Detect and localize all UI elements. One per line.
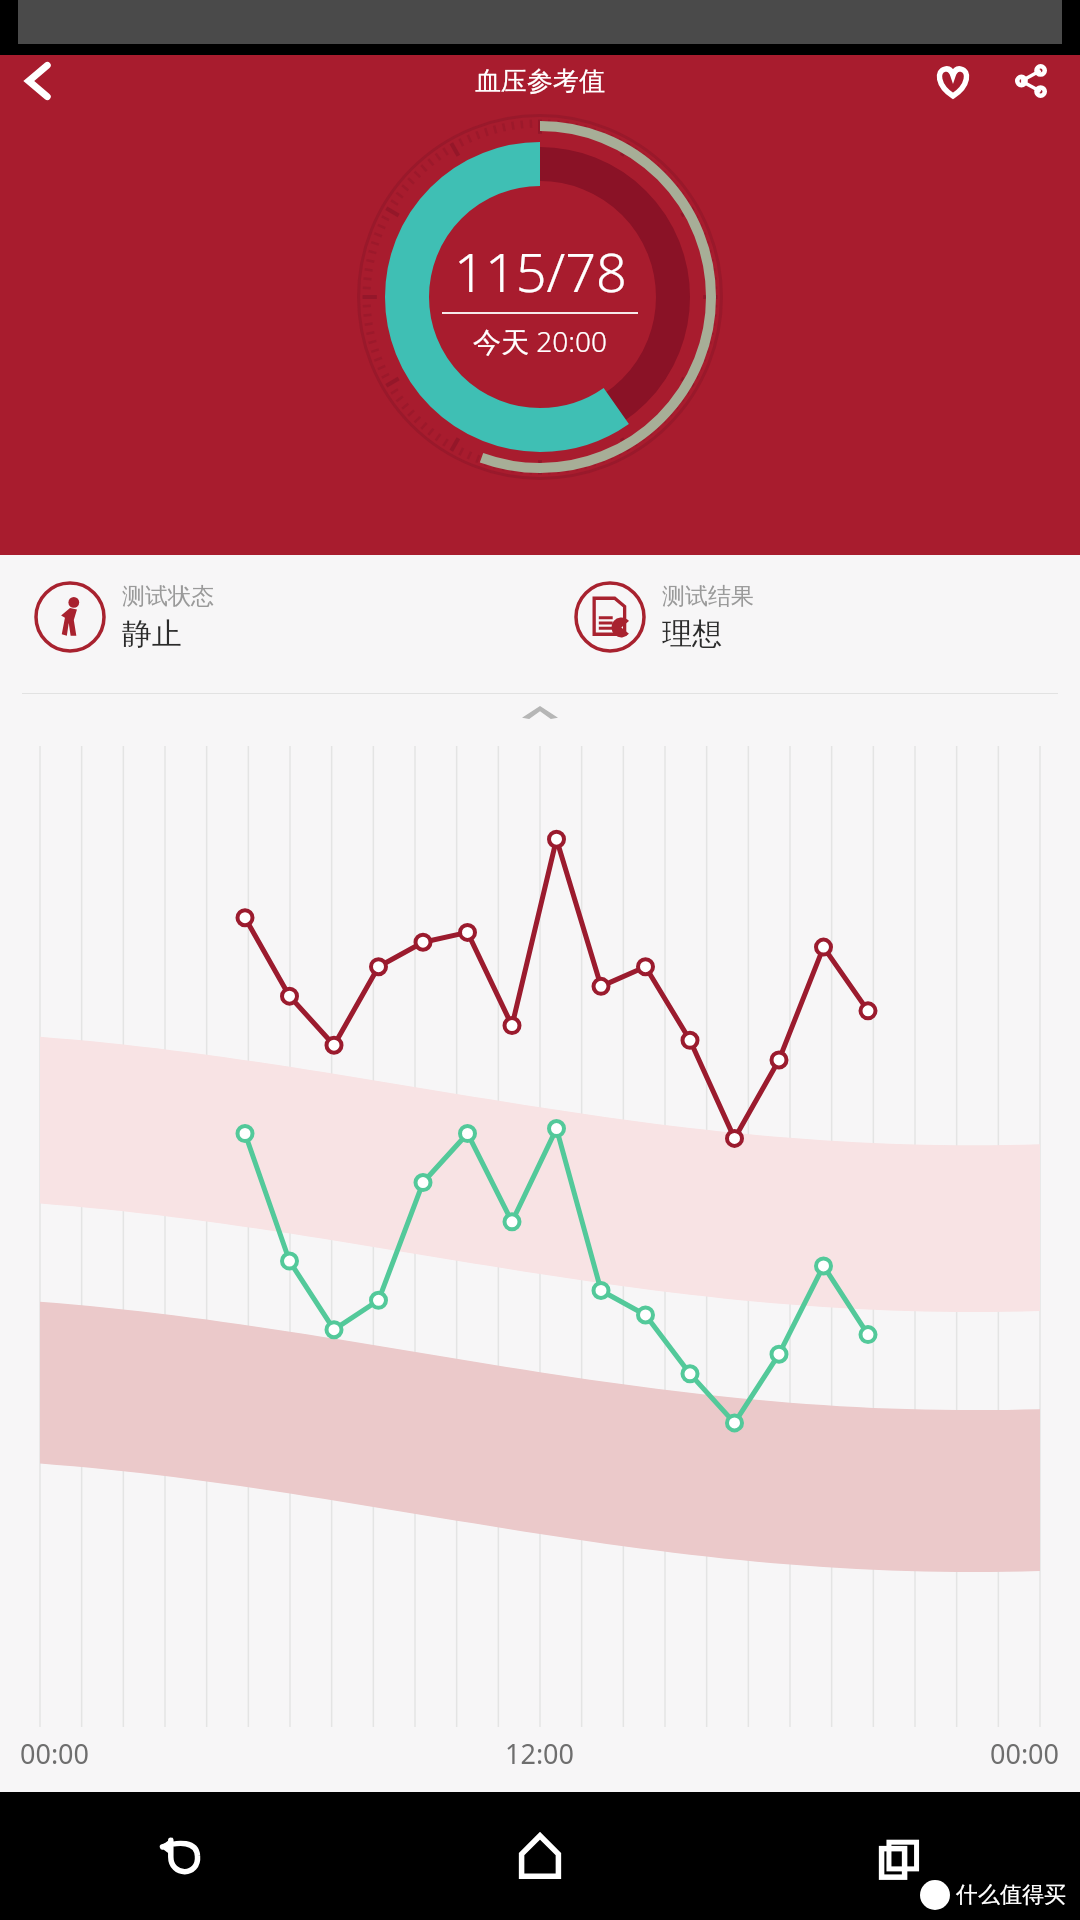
button[interactable]: Recents	[720, 1792, 1080, 1920]
staticText: 00:00	[990, 1735, 1060, 1772]
button[interactable]: Home	[360, 1792, 720, 1920]
staticText: 静止	[122, 615, 182, 653]
staticText: 今天 20:00	[473, 322, 608, 360]
button[interactable]: Share	[1004, 55, 1058, 107]
staticText: 测试状态	[122, 582, 214, 611]
staticText: 115/78	[454, 234, 627, 308]
button[interactable]: Back	[0, 1792, 360, 1920]
button[interactable]: 测试状态	[34, 581, 540, 653]
staticText: 血压参考值	[475, 65, 605, 98]
button[interactable]: Collapse	[0, 694, 1080, 728]
button[interactable]: Favorite	[926, 55, 980, 107]
staticText: 00:00	[20, 1735, 90, 1772]
staticText: 12:00	[505, 1735, 575, 1772]
staticText: 测试结果	[662, 582, 754, 611]
button[interactable]: 测试结果	[574, 581, 1080, 653]
staticText: 理想	[662, 615, 722, 653]
button[interactable]: Back	[10, 55, 66, 107]
staticText: 什么值得买	[956, 1881, 1066, 1909]
